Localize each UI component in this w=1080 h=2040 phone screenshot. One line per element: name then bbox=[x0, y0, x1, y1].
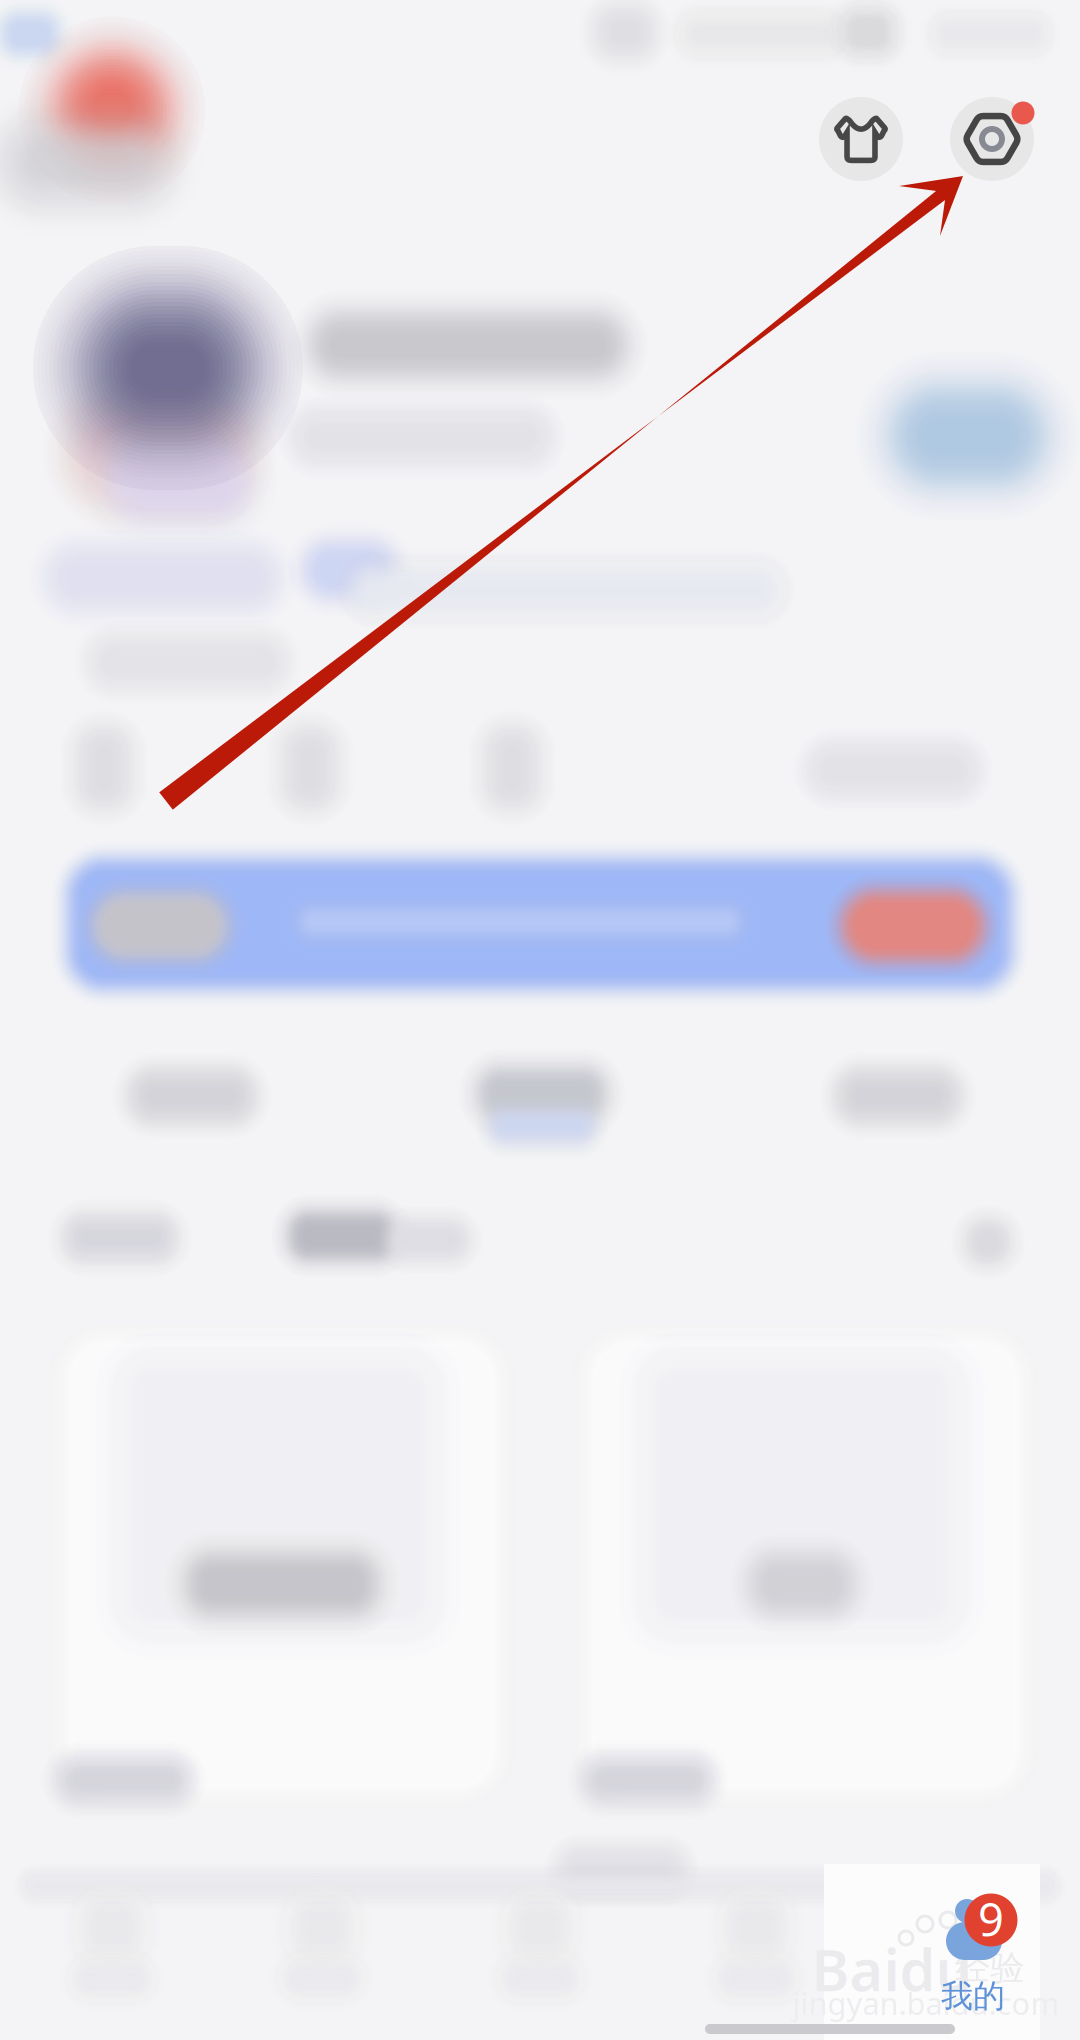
button[interactable]: Outfits bbox=[819, 97, 903, 181]
staticText: 我的 bbox=[941, 1976, 1005, 2016]
staticText: jingyan.baidu.com bbox=[792, 1983, 1059, 2023]
staticText: Baidu bbox=[811, 1931, 972, 2007]
staticText: 9 bbox=[978, 1889, 1004, 1949]
staticText: 经验 bbox=[955, 1947, 1025, 1989]
button[interactable]: 9 bbox=[892, 1875, 1052, 2015]
button[interactable]: Settings bbox=[950, 97, 1034, 181]
